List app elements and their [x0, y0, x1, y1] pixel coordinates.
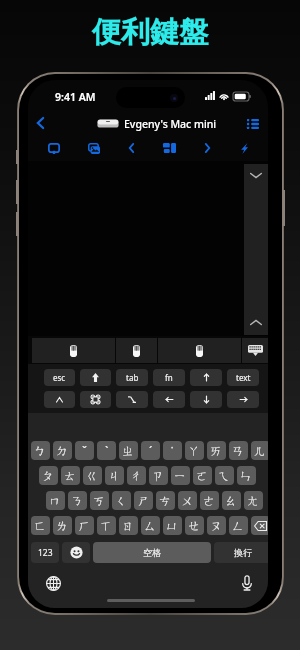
staticText: ㄙ [144, 518, 157, 533]
staticText: ㄖ [122, 518, 135, 533]
button[interactable]: Previous [116, 136, 146, 160]
button[interactable]: ㄩ [163, 516, 182, 535]
staticText: ㄨ [181, 493, 194, 508]
staticText: ㄣ [240, 468, 253, 483]
staticText: ㄚ [188, 443, 201, 458]
button[interactable]: Next [192, 136, 222, 160]
button[interactable]: Arrow right [227, 391, 259, 408]
staticText: ㄤ [247, 493, 260, 508]
button[interactable]: Shift [80, 369, 111, 386]
button[interactable]: Trackpad button 2 [116, 338, 157, 363]
staticText: ㄝ [188, 518, 201, 533]
button[interactable]: ㄋ [68, 491, 87, 510]
button[interactable]: ㄚ [185, 441, 204, 460]
button[interactable]: ㄅ [31, 441, 50, 460]
button[interactable]: ㄘ [156, 491, 175, 510]
button[interactable]: ㄦ [251, 441, 268, 460]
button[interactable]: esc [44, 369, 75, 386]
staticText: 空格 [143, 547, 161, 558]
staticText: ㄟ [218, 468, 231, 483]
staticText: ㄐ [108, 468, 121, 483]
staticText: ㄜ [203, 493, 216, 508]
button[interactable]: ㄇ [46, 491, 65, 510]
button[interactable]: ㄤ [244, 491, 263, 510]
staticText: ㄈ [34, 518, 47, 533]
button[interactable]: ˇ [75, 441, 94, 460]
button[interactable]: ㄡ [207, 516, 226, 535]
button[interactable]: Dictation [236, 572, 258, 594]
button[interactable]: ㄧ [171, 466, 190, 485]
staticText: ㄛ [196, 468, 209, 483]
button[interactable]: ㄈ [31, 516, 50, 535]
button[interactable]: ㄞ [207, 441, 226, 460]
button[interactable]: Power [229, 136, 259, 160]
button[interactable]: Emoji [62, 542, 90, 563]
button[interactable]: ㄔ [127, 466, 146, 485]
button[interactable]: Arrow left [153, 391, 185, 408]
button[interactable]: Trackpad button 3 [158, 338, 241, 363]
button[interactable]: Back [30, 113, 50, 133]
button[interactable]: Delete [251, 516, 268, 535]
button[interactable]: Show keyboard [242, 338, 268, 363]
button[interactable]: Display [39, 136, 69, 160]
button[interactable]: Next keyboard [42, 572, 64, 594]
button[interactable]: ㄣ [237, 466, 256, 485]
button[interactable]: ㄕ [134, 491, 153, 510]
button[interactable]: ㄛ [193, 466, 212, 485]
staticText: ˇ [82, 443, 88, 459]
button[interactable]: fn [153, 369, 185, 386]
button[interactable]: tab [116, 369, 148, 386]
button[interactable]: ㄆ [39, 466, 58, 485]
button[interactable]: ㄉ [53, 441, 72, 460]
button[interactable]: Photos [79, 136, 109, 160]
button[interactable]: ㄑ [112, 491, 131, 510]
button[interactable]: Evgeny's Mac mini [97, 112, 217, 135]
button[interactable]: ㄐ [105, 466, 124, 485]
button[interactable]: ㄠ [222, 491, 241, 510]
staticText: ㄢ [232, 443, 245, 458]
button[interactable]: ㄜ [200, 491, 219, 510]
button[interactable]: Trackpad button 1 [32, 338, 115, 363]
staticText: ㄅ [34, 443, 47, 458]
button[interactable]: ㄖ [119, 516, 138, 535]
button[interactable]: ㄢ [229, 441, 248, 460]
staticText: 123 [38, 547, 53, 559]
button[interactable]: ㄊ [61, 466, 80, 485]
button[interactable]: ㄝ [185, 516, 204, 535]
button[interactable]: Arrow down [190, 391, 222, 408]
button[interactable]: ˊ [141, 441, 160, 460]
button[interactable]: Window layout [154, 136, 184, 160]
button[interactable]: ㄙ [141, 516, 160, 535]
button[interactable] [44, 391, 75, 408]
button[interactable]: ㄗ [149, 466, 168, 485]
staticText: ㄔ [130, 468, 143, 483]
staticText: ㄒ [100, 518, 113, 533]
button[interactable]: ㄒ [97, 516, 116, 535]
button[interactable]: 空格 [93, 542, 211, 563]
staticText: ㄓ [122, 443, 135, 458]
button[interactable]: ㄟ [215, 466, 234, 485]
button[interactable]: ㄨ [178, 491, 197, 510]
button[interactable]: Scroll [244, 164, 268, 335]
staticText: ㄩ [166, 518, 179, 533]
button[interactable]: ㄏ [75, 516, 94, 535]
staticText: ㄥ [232, 518, 245, 533]
staticText: ㄊ [64, 468, 77, 483]
staticText: 9:41 AM [55, 90, 96, 103]
button[interactable]: Device list [242, 114, 263, 134]
button[interactable]: Command [80, 391, 111, 408]
button[interactable]: Arrow up [190, 369, 222, 386]
button[interactable]: 123 [31, 542, 59, 563]
button[interactable]: 換行 [214, 542, 268, 563]
staticText: ㄍ [86, 468, 99, 483]
button[interactable]: ㄌ [53, 516, 72, 535]
staticText: ㄆ [42, 468, 55, 483]
button[interactable]: ㄥ [229, 516, 248, 535]
button[interactable]: Option [116, 391, 148, 408]
button[interactable]: ㄍ [83, 466, 102, 485]
button[interactable]: ˙ [163, 441, 182, 460]
button[interactable]: ㄎ [90, 491, 109, 510]
button[interactable]: text [227, 369, 259, 386]
button[interactable]: ˋ [97, 441, 116, 460]
button[interactable]: ㄓ [119, 441, 138, 460]
